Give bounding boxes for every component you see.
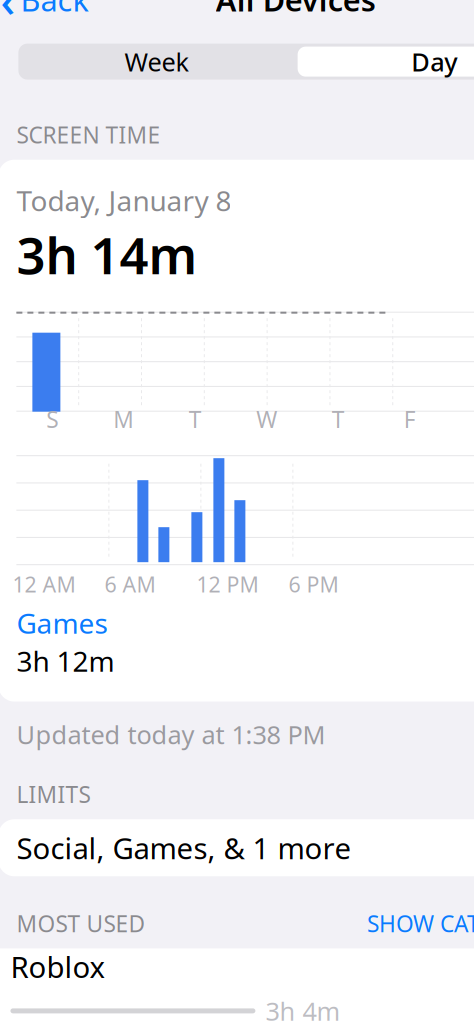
button[interactable]: ‹ xyxy=(0,0,102,24)
staticText: LIMITS xyxy=(16,779,90,809)
staticText: SHOW CATEGORIES xyxy=(367,908,474,938)
staticText: Today, January 8 xyxy=(16,182,231,219)
staticText: Social, Games, & 1 more xyxy=(16,828,351,867)
staticText: 12 PM xyxy=(196,570,258,598)
staticText: 6 AM xyxy=(104,570,155,598)
staticText: MOST USED xyxy=(16,908,145,938)
button[interactable]: Week xyxy=(18,47,296,77)
staticText: 3h 14m xyxy=(16,221,197,288)
staticText: F xyxy=(404,404,416,434)
button[interactable]: Social, Games, & 1 more xyxy=(0,819,474,876)
staticText: T xyxy=(332,404,345,434)
staticText: Roblox xyxy=(10,947,105,986)
staticText: Back xyxy=(20,0,88,20)
button[interactable]: Games xyxy=(16,604,474,680)
staticText: 6 PM xyxy=(288,570,338,598)
staticText: M xyxy=(113,404,134,434)
staticText: Updated today at 1:38 PM xyxy=(16,717,325,751)
staticText: 3h 12m xyxy=(16,642,114,680)
staticText: All Devices xyxy=(216,0,376,20)
staticText: 3h 4m xyxy=(265,994,340,1025)
staticText: 12 AM xyxy=(12,570,75,598)
staticText: S xyxy=(46,404,58,434)
button[interactable]: Day xyxy=(298,47,474,77)
button[interactable]: Roblox xyxy=(0,948,474,1025)
button[interactable]: SHOW CATEGORIES xyxy=(367,908,474,938)
staticText: T xyxy=(189,404,202,434)
staticText: W xyxy=(256,404,277,434)
staticText: SCREEN TIME xyxy=(16,120,160,150)
staticText: Day xyxy=(411,45,457,78)
staticText: Games xyxy=(16,604,107,641)
staticText: Week xyxy=(124,45,189,78)
staticText: ‹ xyxy=(0,0,15,30)
